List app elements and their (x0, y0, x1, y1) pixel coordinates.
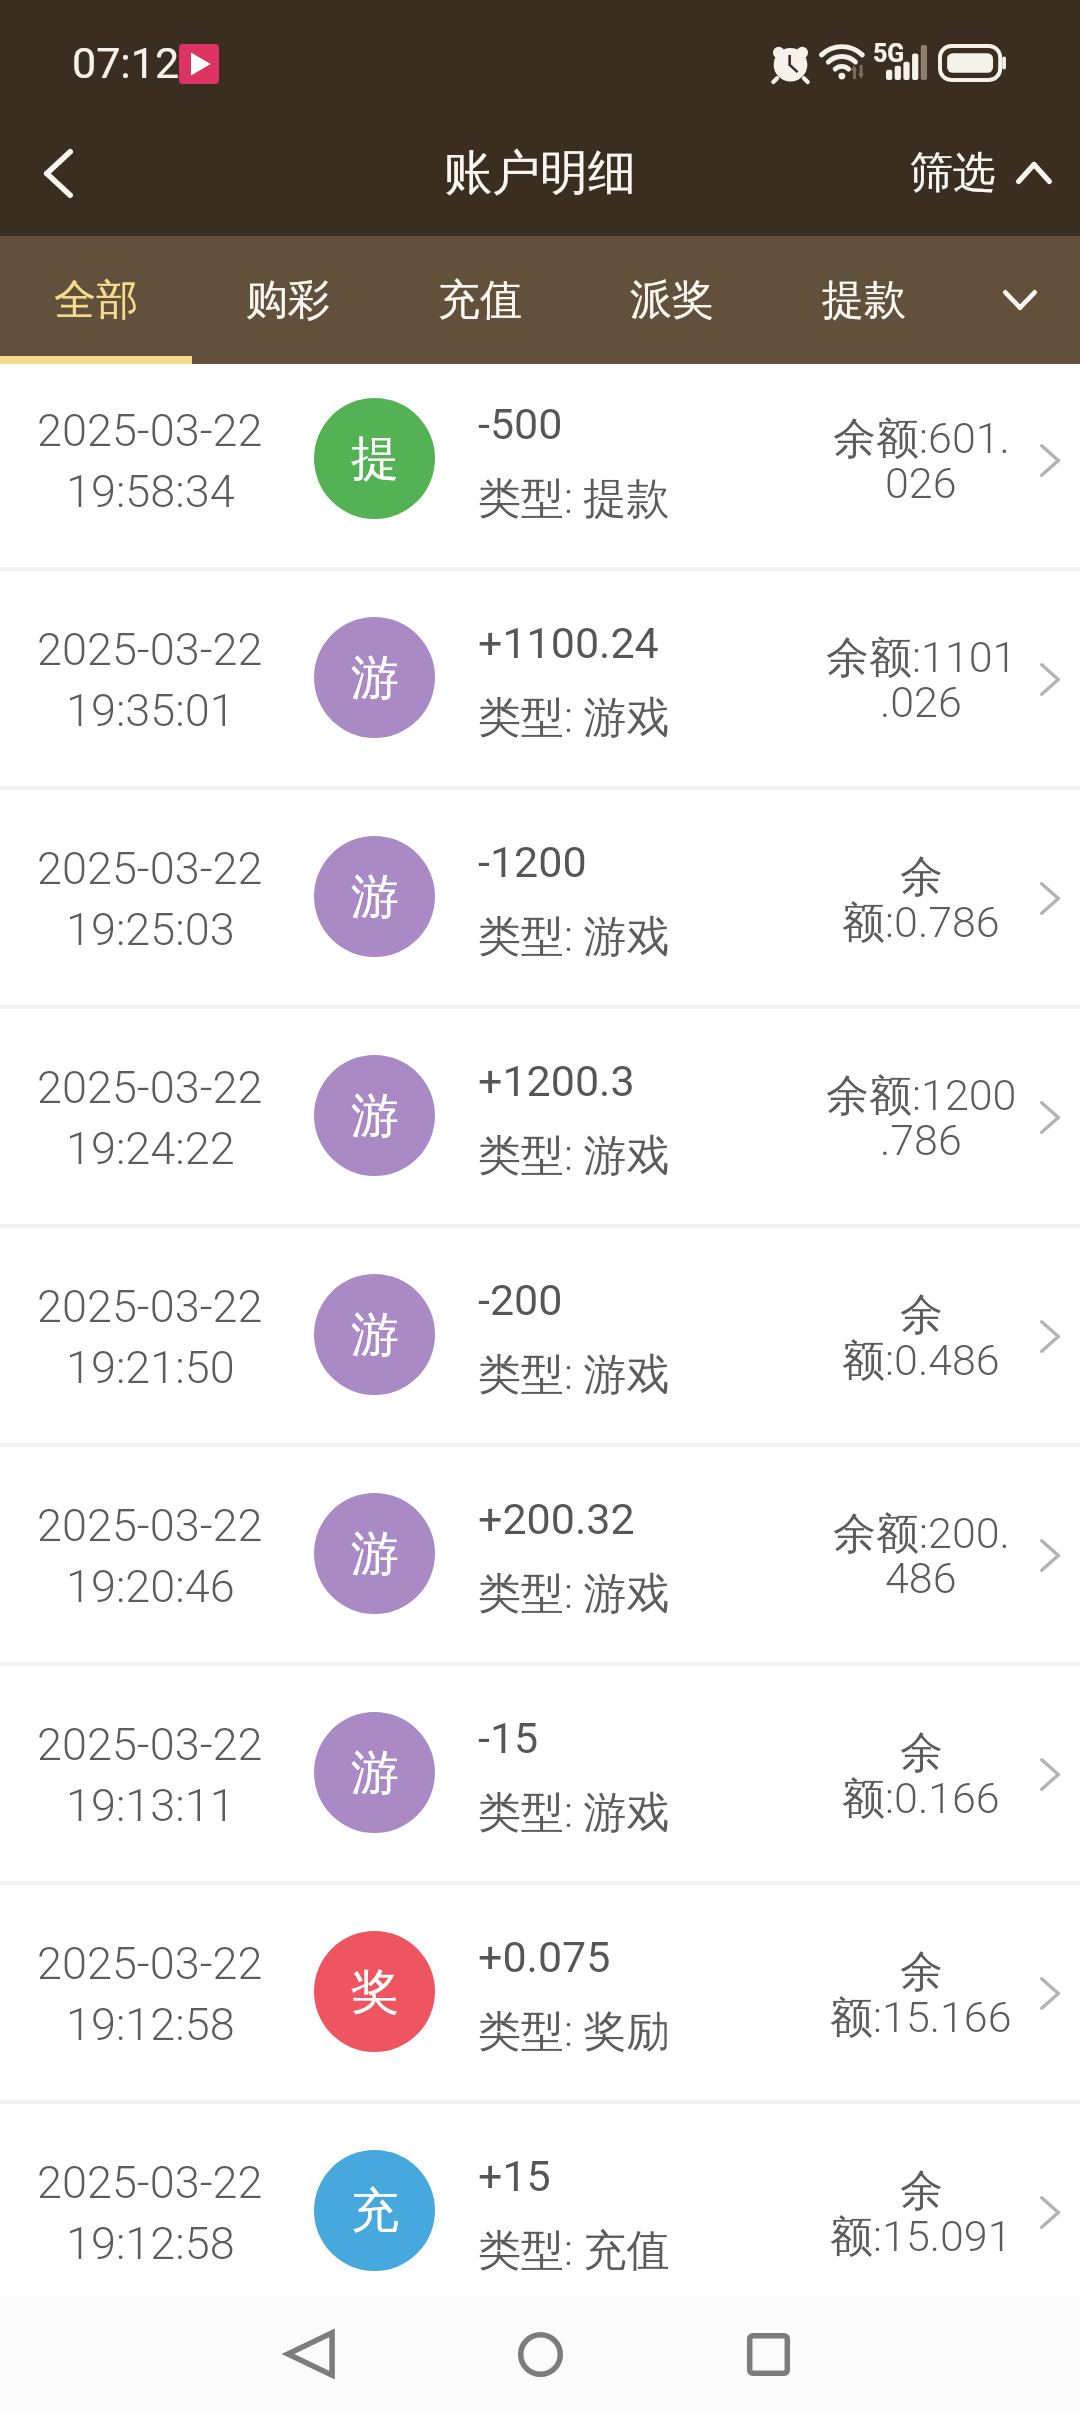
staticText: 19:24:22 (66, 1122, 235, 1175)
staticText: 2025-03-22 (37, 1061, 263, 1114)
button[interactable]: Back (255, 2299, 365, 2409)
staticText: .786 (880, 1115, 962, 1165)
staticText: 类型: 游戏 (478, 691, 670, 745)
button[interactable]: 2025-03-22 (0, 1228, 1080, 1443)
button[interactable]: 2025-03-22 (0, 1447, 1080, 1662)
staticText: 5G (873, 39, 905, 68)
staticText: 类型: 提款 (478, 472, 670, 526)
button[interactable]: 2025-03-22 (0, 2104, 1080, 2319)
button[interactable]: 提款 (768, 236, 960, 364)
staticText: +1100.24 (478, 618, 659, 668)
button[interactable]: 2025-03-22 (0, 1009, 1080, 1224)
staticText: 2025-03-22 (37, 623, 263, 676)
staticText: 游 (351, 1305, 399, 1365)
staticText: 筛选 (910, 146, 996, 200)
staticText: .026 (880, 677, 962, 727)
staticText: 类型: 奖励 (478, 2005, 670, 2059)
button[interactable]: Back (0, 110, 120, 236)
button[interactable]: Home (485, 2299, 595, 2409)
staticText: 类型: 游戏 (478, 1348, 670, 1402)
staticText: +200.32 (478, 1494, 635, 1544)
staticText: 余额:1200 (826, 1069, 1017, 1123)
staticText: 19:25:03 (66, 903, 235, 956)
staticText: 余 (900, 2164, 943, 2218)
staticText: 游 (351, 1743, 399, 1803)
staticText: 额:0.166 (842, 1772, 1000, 1826)
button[interactable]: Expand filters (960, 236, 1080, 364)
staticText: 2025-03-22 (37, 1937, 263, 1990)
staticText: 购彩 (246, 274, 330, 327)
button[interactable]: 2025-03-22 (0, 352, 1080, 567)
staticText: 486 (885, 1553, 957, 1603)
staticText: 2025-03-22 (37, 2156, 263, 2209)
staticText: 类型: 游戏 (478, 1786, 670, 1840)
staticText: 2025-03-22 (37, 1280, 263, 1333)
staticText: 余额:601. (833, 412, 1010, 466)
staticText: +0.075 (478, 1932, 611, 1982)
staticText: 19:13:11 (66, 1779, 235, 1832)
staticText: 余 (900, 1726, 943, 1780)
staticText: 026 (885, 458, 957, 508)
staticText: -1200 (478, 837, 587, 887)
staticText: 余 (900, 1288, 943, 1342)
staticText: 2025-03-22 (37, 1499, 263, 1552)
staticText: 游 (351, 1524, 399, 1584)
staticText: -200 (478, 1275, 563, 1325)
staticText: 19:12:58 (66, 1998, 235, 2051)
button[interactable]: 2025-03-22 (0, 790, 1080, 1005)
staticText: 额:0.786 (842, 896, 1000, 950)
button[interactable]: Recent apps (713, 2299, 823, 2409)
button[interactable]: 充值 (384, 236, 576, 364)
staticText: -500 (478, 399, 563, 449)
staticText: 游 (351, 867, 399, 927)
staticText: 余额:1101 (826, 631, 1017, 685)
staticText: 提款 (822, 274, 906, 327)
staticText: 2025-03-22 (37, 404, 263, 457)
staticText: 19:20:46 (66, 1560, 235, 1613)
staticText: 07:12 (72, 38, 180, 88)
staticText: 全部 (54, 274, 138, 327)
staticText: 账户明细 (444, 143, 636, 203)
staticText: 额:15.166 (830, 1991, 1012, 2045)
staticText: 2025-03-22 (37, 1718, 263, 1771)
staticText: 游 (351, 1086, 399, 1146)
staticText: 类型: 充值 (478, 2224, 670, 2278)
staticText: 余额:200. (833, 1507, 1010, 1561)
staticText: 充值 (438, 274, 522, 327)
button[interactable]: 筛选 (910, 110, 1052, 236)
button[interactable]: 派奖 (576, 236, 768, 364)
button[interactable]: 全部 (0, 236, 192, 364)
button[interactable]: 2025-03-22 (0, 571, 1080, 786)
staticText: 充 (351, 2181, 399, 2241)
staticText: 类型: 游戏 (478, 1129, 670, 1183)
staticText: 19:12:58 (66, 2217, 235, 2270)
staticText: 类型: 游戏 (478, 1567, 670, 1621)
staticText: +15 (478, 2151, 551, 2201)
staticText: 余 (900, 1945, 943, 1999)
staticText: 额:15.091 (830, 2210, 1012, 2264)
staticText: 余 (900, 850, 943, 904)
staticText: -15 (478, 1713, 539, 1763)
button[interactable]: 2025-03-22 (0, 1885, 1080, 2100)
button[interactable]: 购彩 (192, 236, 384, 364)
staticText: 19:58:34 (66, 465, 235, 518)
staticText: 游 (351, 648, 399, 708)
staticText: 提 (351, 429, 399, 489)
staticText: 19:21:50 (66, 1341, 235, 1394)
staticText: 2025-03-22 (37, 842, 263, 895)
staticText: 类型: 游戏 (478, 910, 670, 964)
button[interactable]: 2025-03-22 (0, 1666, 1080, 1881)
staticText: 额:0.486 (842, 1334, 1000, 1388)
staticText: 19:35:01 (66, 684, 235, 737)
staticText: 奖 (351, 1962, 399, 2022)
staticText: 派奖 (630, 274, 714, 327)
staticText: +1200.3 (478, 1056, 635, 1106)
